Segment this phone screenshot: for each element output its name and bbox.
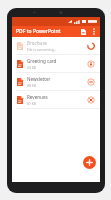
staticText: Revenues: [27, 94, 48, 100]
button[interactable]: More options: [89, 27, 98, 36]
button[interactable]: Brochure: [12, 37, 100, 54]
button[interactable]: Download: [85, 58, 96, 69]
staticText: 41 KB: [27, 101, 37, 106]
staticText: Greeting card: [27, 58, 57, 64]
button[interactable]: Open document: [79, 27, 88, 36]
staticText: Newsletter: [27, 76, 51, 82]
button[interactable]: Add file: [83, 156, 96, 169]
staticText: 24 KB: [27, 65, 37, 70]
button[interactable]: Converting: [85, 40, 96, 51]
button[interactable]: Revenues: [12, 91, 100, 108]
button[interactable]: Greeting card: [12, 55, 100, 72]
button[interactable]: Share: [85, 76, 96, 87]
staticText: File is converting...: [27, 47, 57, 52]
button[interactable]: Remove: [85, 94, 96, 105]
staticText: PDF to PowerPoint: [16, 28, 61, 35]
button[interactable]: Newsletter: [12, 73, 100, 90]
staticText: 88 KB: [27, 83, 37, 88]
staticText: Brochure: [27, 40, 47, 46]
